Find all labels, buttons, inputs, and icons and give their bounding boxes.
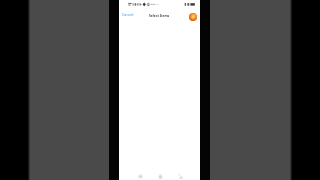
button[interactable]: Recents [133, 169, 147, 180]
button[interactable]: Back [173, 169, 187, 180]
staticText: Cancel [122, 12, 134, 17]
staticText: Select Items [149, 13, 170, 17]
button[interactable]: Home [153, 169, 167, 180]
button[interactable]: Add item [189, 13, 197, 21]
button[interactable]: Cancel [120, 9, 136, 20]
